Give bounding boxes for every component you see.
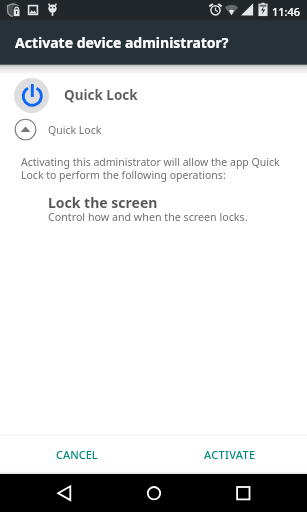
staticText: Quick Lock (64, 86, 138, 104)
staticText: Control how and when the screen locks. (48, 210, 248, 225)
staticText: Activate device administrator? (15, 33, 229, 52)
button[interactable]: Recent apps (223, 474, 263, 512)
staticText: Lock the screen (48, 193, 158, 212)
staticText: CANCEL (56, 447, 98, 462)
button[interactable]: Back (44, 474, 84, 512)
staticText: Activating this administrator will allow… (21, 155, 283, 182)
staticText: 11:46 (272, 4, 301, 19)
staticText: Quick Lock (48, 123, 102, 137)
button[interactable]: CANCEL (0, 435, 153, 474)
staticText: ACTIVATE (204, 447, 256, 462)
button[interactable]: Home (134, 474, 174, 512)
button[interactable]: Quick Lock (0, 118, 307, 141)
button[interactable]: ACTIVATE (153, 435, 307, 474)
button[interactable]: Quick Lock (0, 78, 307, 113)
